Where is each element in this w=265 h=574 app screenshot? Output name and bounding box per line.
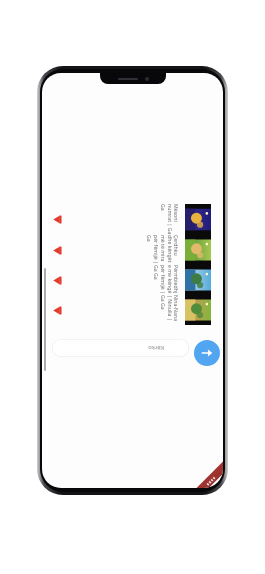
button[interactable]: Çerdhku dhe këngët më të mira për fëmijë… [48, 235, 211, 265]
staticText: Çerdhku dhe këngët më të mira për fëmijë… [145, 235, 180, 265]
staticText: Përmbledhje me këngë për fëmijë | Ga Ga [152, 265, 180, 295]
button[interactable]: Nina-Nana | Ninulla | Ga Ga [48, 295, 211, 325]
staticText: Mësoni numrat | Ga Ga [159, 204, 180, 235]
staticText: Kërko video... [146, 344, 164, 352]
button[interactable]: Play video [53, 246, 62, 255]
button[interactable]: Scroll to top [194, 340, 220, 366]
button[interactable]: Mësoni numrat | Ga Ga [48, 204, 211, 235]
button[interactable]: Përmbledhje me këngë për fëmijë | Ga Ga [48, 265, 211, 295]
staticText: Nina-Nana | Ninulla | Ga Ga [159, 295, 180, 325]
button[interactable]: Play video [53, 276, 62, 285]
button[interactable]: Kërko video... [52, 339, 189, 357]
button[interactable]: Play video [53, 306, 62, 315]
button[interactable]: Play video [53, 215, 62, 224]
